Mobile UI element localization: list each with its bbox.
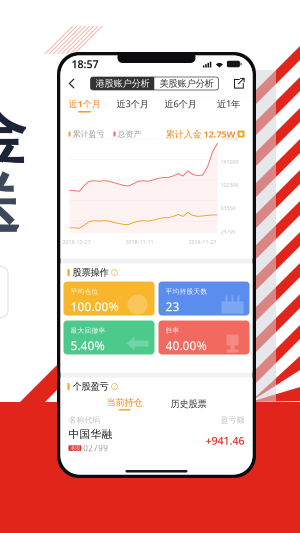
staticText: 中国华融	[68, 428, 112, 441]
staticText: 送	[0, 166, 20, 244]
staticText: 总资产	[117, 129, 141, 139]
button[interactable]: 当前持仓	[92, 395, 156, 412]
staticText: 23	[165, 299, 179, 315]
staticText: 当前持仓	[106, 397, 142, 408]
staticText: 平均持股天数	[165, 287, 207, 296]
staticText: 2018-11-27	[188, 238, 216, 246]
staticText: 近1个月	[68, 98, 100, 110]
button[interactable]: 历史股票	[156, 395, 220, 412]
staticText: 最大回撤率	[70, 326, 105, 335]
staticText: 18:57	[71, 57, 98, 71]
button[interactable]: Share	[226, 70, 251, 96]
staticText: 近1年	[217, 98, 240, 110]
staticText: +941.46	[205, 433, 244, 448]
staticText: 港股	[70, 445, 80, 451]
button[interactable]: 美股账户分析	[154, 77, 218, 90]
staticText: 179700	[220, 135, 238, 142]
button[interactable]: Back	[61, 71, 82, 96]
button[interactable]: 中国华融	[60, 427, 252, 453]
button[interactable]: 港股账户分析	[90, 77, 154, 90]
staticText: ?	[113, 269, 115, 276]
staticText: 金	[0, 98, 26, 176]
button[interactable]: 近3个月	[108, 96, 156, 114]
staticText: 24700	[220, 228, 235, 235]
staticText: 40.00%	[165, 338, 206, 354]
staticText: 股票操作	[72, 267, 108, 278]
staticText: 港股账户分析	[95, 78, 149, 89]
button[interactable]: 近1个月	[60, 96, 108, 114]
staticText: ?	[113, 383, 115, 390]
staticText: 历史股票	[170, 398, 206, 410]
staticText: 累计盈亏	[72, 129, 104, 139]
staticText: 102300	[220, 181, 238, 189]
staticText: 2018-11-11	[125, 238, 153, 246]
staticText: 100.00%	[70, 299, 118, 315]
staticText: 近6个月	[164, 98, 196, 110]
staticText: 161000	[220, 158, 238, 165]
staticText: 胜率	[165, 326, 179, 335]
button[interactable]: 近1年	[204, 96, 252, 114]
staticText: 近3个月	[116, 98, 148, 110]
staticText: 5.40%	[70, 338, 104, 354]
staticText: 累计入金 12.75W	[165, 128, 235, 140]
staticText: 美股账户分析	[159, 78, 213, 89]
staticText: 盈亏额	[220, 415, 244, 425]
staticText: 平均仓位	[70, 287, 98, 296]
staticText: 个股盈亏	[72, 381, 108, 392]
staticText: 名称代码	[68, 415, 100, 425]
button[interactable]: 近6个月	[156, 96, 204, 114]
staticText: 2018-10-27	[62, 238, 90, 246]
staticText: 63500	[220, 205, 235, 212]
staticText: 02799	[83, 443, 108, 453]
